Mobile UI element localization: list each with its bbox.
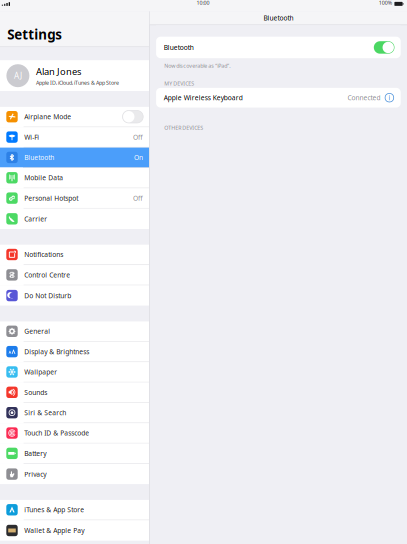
- staticText: Off: [133, 133, 143, 141]
- button[interactable]: Apple Wireless Keyboard: [156, 88, 401, 108]
- staticText: Alan Jones: [36, 65, 81, 77]
- staticText: On: [134, 153, 143, 162]
- staticText: Privacy: [24, 470, 46, 478]
- button[interactable]: Carrier: [0, 209, 149, 229]
- staticText: Off: [133, 194, 143, 203]
- staticText: Apple ID, iCloud, iTunes & App Store: [36, 79, 119, 86]
- staticText: Sounds: [24, 388, 47, 397]
- staticText: Now discoverable as “iPad”.: [164, 62, 230, 69]
- button[interactable]: Airplane Mode: [0, 107, 149, 127]
- button[interactable]: Wallpaper: [0, 362, 149, 382]
- staticText: Settings: [7, 26, 62, 43]
- staticText: General: [24, 327, 50, 336]
- staticText: 10:00: [196, 0, 209, 6]
- staticText: Battery: [24, 449, 46, 458]
- staticText: Wallet & Apple Pay: [24, 526, 84, 535]
- button[interactable]: Wi-Fi: [0, 127, 149, 148]
- button[interactable]: Notifications: [0, 245, 149, 265]
- staticText: Touch ID & Passcode: [24, 429, 89, 437]
- staticText: Apple Wireless Keyboard: [164, 93, 243, 102]
- staticText: Wi-Fi: [24, 133, 39, 141]
- staticText: MY DEVICES: [164, 80, 194, 87]
- button[interactable]: Display & Brightness: [0, 342, 149, 362]
- button[interactable]: AJ: [0, 60, 149, 91]
- staticText: Personal Hotspot: [24, 194, 78, 203]
- staticText: AJ: [14, 70, 22, 81]
- staticText: Wallpaper: [24, 367, 57, 376]
- button[interactable]: Sounds: [0, 382, 149, 403]
- button[interactable]: General: [0, 321, 149, 342]
- staticText: Notifications: [24, 250, 63, 259]
- button[interactable]: Battery: [0, 444, 149, 464]
- button[interactable]: Mobile Data: [0, 168, 149, 188]
- staticText: Carrier: [24, 214, 47, 223]
- staticText: i: [388, 93, 390, 102]
- staticText: Siri & Search: [24, 408, 66, 417]
- button[interactable]: Personal Hotspot: [0, 188, 149, 209]
- button[interactable]: Control Centre: [0, 265, 149, 285]
- button[interactable]: Wallet & Apple Pay: [0, 520, 149, 541]
- staticText: Control Centre: [24, 270, 70, 279]
- staticText: iTunes & App Store: [24, 505, 84, 514]
- staticText: Display & Brightness: [24, 347, 89, 356]
- button[interactable]: iTunes & App Store: [0, 500, 149, 520]
- staticText: Bluetooth: [164, 43, 194, 52]
- staticText: OTHER DEVICES: [164, 124, 203, 131]
- button[interactable]: Bluetooth: [156, 37, 401, 58]
- button[interactable]: Bluetooth: [0, 148, 149, 168]
- button[interactable]: Privacy: [0, 464, 149, 484]
- button[interactable]: Siri & Search: [0, 403, 149, 423]
- staticText: Mobile Data: [24, 173, 63, 182]
- staticText: Do Not Disturb: [24, 291, 71, 300]
- button[interactable]: Do Not Disturb: [0, 285, 149, 306]
- staticText: Connected: [348, 93, 381, 102]
- staticText: 100%: [379, 0, 392, 6]
- button[interactable]: Touch ID & Passcode: [0, 423, 149, 444]
- staticText: Bluetooth: [24, 153, 54, 162]
- staticText: Airplane Mode: [24, 112, 71, 121]
- staticText: Bluetooth: [263, 14, 293, 22]
